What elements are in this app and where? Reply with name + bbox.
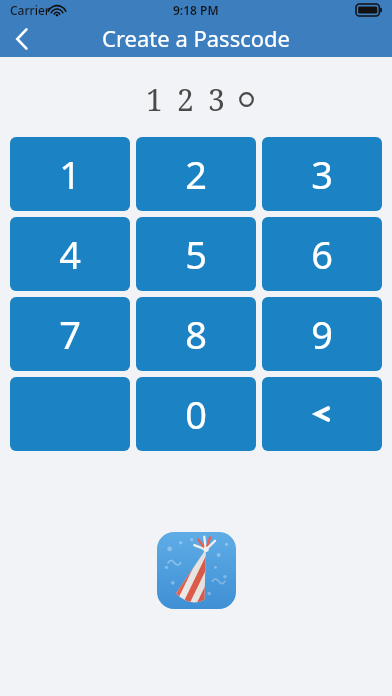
- staticText: Create a Passcode: [102, 23, 290, 53]
- staticText: 3: [311, 148, 333, 200]
- button[interactable]: 0: [136, 377, 256, 451]
- staticText: Carrier: [10, 2, 50, 18]
- button[interactable]: 8: [136, 297, 256, 371]
- staticText: 1: [146, 79, 163, 119]
- button[interactable]: Back: [0, 20, 44, 57]
- staticText: 2: [177, 79, 194, 119]
- button[interactable]: 3: [262, 137, 382, 211]
- staticText: 6: [311, 228, 333, 280]
- button[interactable]: 5: [136, 217, 256, 291]
- button[interactable]: 9: [262, 297, 382, 371]
- staticText: 4: [59, 228, 81, 280]
- staticText: 2: [185, 148, 207, 200]
- button[interactable]: Delete: [262, 377, 382, 451]
- staticText: 8: [185, 308, 207, 360]
- staticText: 9:18 PM: [173, 2, 219, 18]
- staticText: 7: [59, 308, 81, 360]
- button[interactable]: 6: [262, 217, 382, 291]
- button[interactable]: 1: [10, 137, 130, 211]
- staticText: 1: [59, 148, 81, 200]
- staticText: 5: [185, 228, 207, 280]
- staticText: 9: [311, 308, 333, 360]
- button[interactable]: 7: [10, 297, 130, 371]
- button[interactable]: Blank: [10, 377, 130, 451]
- button[interactable]: 2: [136, 137, 256, 211]
- staticText: 0: [185, 388, 207, 440]
- staticText: 3: [208, 79, 225, 119]
- button[interactable]: 4: [10, 217, 130, 291]
- button[interactable]: App icon: [157, 532, 236, 609]
